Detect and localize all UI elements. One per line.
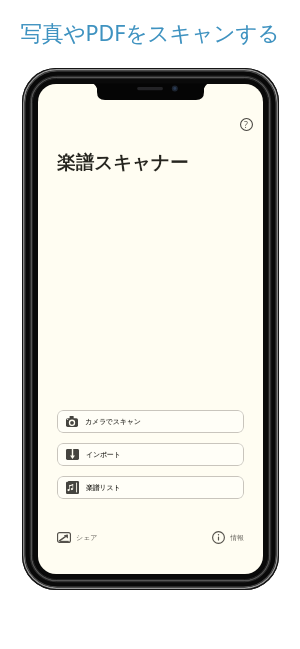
button[interactable]: Share xyxy=(57,532,71,543)
staticText: 写真やPDFをスキャンする xyxy=(0,18,300,47)
staticText: シェア xyxy=(76,533,98,542)
staticText: カメラでスキャン xyxy=(85,417,141,426)
staticText: 楽譜スキャナー xyxy=(57,151,189,174)
button[interactable]: Info xyxy=(212,531,225,544)
button[interactable]: Info xyxy=(212,531,244,544)
button[interactable]: Help xyxy=(236,114,256,134)
button[interactable]: カメラでスキャン xyxy=(57,410,244,433)
staticText: インポート xyxy=(86,450,121,459)
button[interactable]: 楽譜リスト xyxy=(57,476,244,499)
button[interactable]: Share xyxy=(57,532,98,543)
staticText: 情報 xyxy=(230,533,244,542)
staticText: 楽譜リスト xyxy=(86,483,121,492)
button[interactable]: インポート xyxy=(57,443,244,466)
staticText: ? xyxy=(244,118,248,130)
